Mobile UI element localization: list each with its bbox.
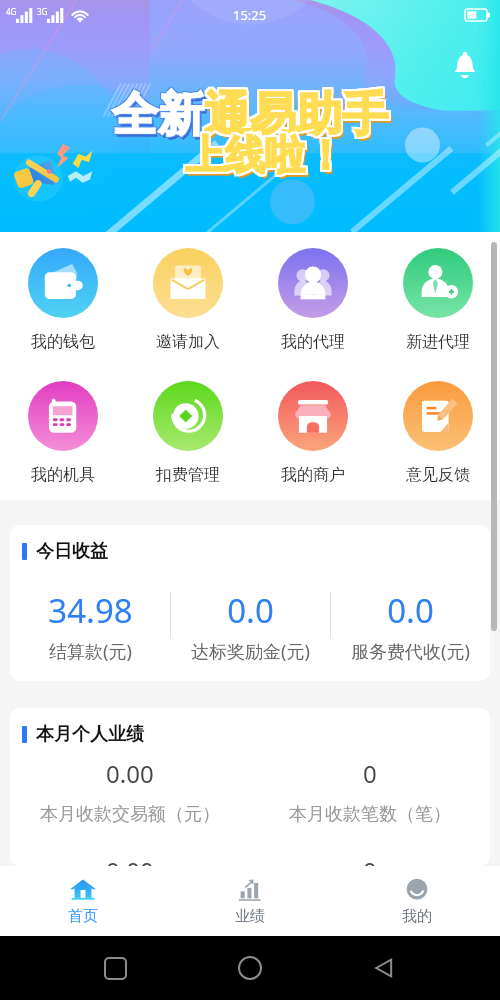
staticText: 本月个人业绩 [36, 723, 144, 746]
staticText: 全新 [113, 85, 205, 143]
staticText: 扣费管理 [156, 465, 220, 485]
staticText: 全新 [111, 87, 203, 145]
staticText: 新进代理 [406, 332, 470, 352]
button[interactable]: 我的钱包 [0, 248, 125, 352]
button[interactable]: Home [230, 948, 270, 988]
staticText: 上线啦！ [183, 128, 343, 178]
staticText: 今日收益 [36, 540, 108, 563]
button[interactable]: Notifications [450, 50, 480, 80]
staticText: 0.00 [106, 757, 154, 790]
staticText: 0.0 [227, 588, 274, 633]
staticText: 通易助手 [204, 86, 388, 144]
button[interactable]: 邀请加入 [125, 248, 250, 352]
button[interactable]: 我的 [333, 866, 500, 936]
staticText: 全新 [113, 86, 205, 144]
staticText: 上线啦！ [187, 128, 347, 178]
staticText: 全新 [113, 87, 205, 145]
staticText: 邀请加入 [156, 332, 220, 352]
staticText: 通易助手 [202, 86, 386, 144]
staticText: 结算款(元) [49, 639, 132, 664]
staticText: 我的商户 [281, 465, 345, 485]
staticText: 3G [37, 6, 48, 17]
staticText: 通易助手 [202, 84, 386, 142]
staticText: 服务费代收(元) [351, 639, 470, 664]
staticText: 15:25 [233, 6, 267, 24]
staticText: 上线啦！ [188, 134, 348, 184]
staticText: 0 [363, 757, 377, 790]
staticText: 本月收款交易额（元） [40, 803, 220, 826]
staticText: 0.00 [106, 854, 154, 866]
button[interactable]: 意见反馈 [375, 381, 500, 485]
staticText: 上线啦！ [185, 132, 345, 182]
button[interactable]: 新进代理 [375, 248, 500, 352]
staticText: 0.0 [387, 588, 434, 633]
button[interactable]: 我的机具 [0, 381, 125, 485]
staticText: 全新 [111, 86, 203, 144]
staticText: 通易助手 [202, 88, 386, 146]
staticText: 全新 [114, 89, 206, 147]
staticText: 34.98 [48, 588, 133, 633]
staticText: 通易助手 [204, 84, 388, 142]
staticText: 通易助手 [204, 88, 388, 146]
staticText: 意见反馈 [406, 465, 470, 485]
staticText: 上线啦！ [187, 130, 347, 180]
staticText: 通易助手 [206, 88, 390, 146]
staticText: 全新 [111, 85, 203, 143]
staticText: 达标奖励金(元) [191, 639, 310, 664]
button[interactable]: Recents [95, 948, 135, 988]
button[interactable]: 扣费管理 [125, 381, 250, 485]
staticText: 我的机具 [31, 465, 95, 485]
staticText: 我的 [402, 907, 432, 926]
button[interactable]: 我的代理 [250, 248, 375, 352]
staticText: 通易助手 [207, 90, 391, 148]
staticText: 我的钱包 [31, 332, 95, 352]
button[interactable]: 业绩 [166, 866, 333, 936]
staticText: 上线啦！ [183, 132, 343, 182]
button[interactable]: Back [365, 948, 405, 988]
staticText: 上线啦！ [183, 130, 343, 180]
staticText: 通易助手 [206, 86, 390, 144]
staticText: 上线啦！ [187, 132, 347, 182]
staticText: 上线啦！ [185, 130, 345, 180]
button[interactable]: 首页 [0, 866, 166, 936]
staticText: 全新 [112, 87, 204, 145]
staticText: 全新 [112, 86, 204, 144]
staticText: 4G [6, 6, 17, 17]
staticText: 上线啦！ [185, 128, 345, 178]
staticText: 本月收款笔数（笔） [289, 803, 451, 826]
staticText: 通易助手 [206, 84, 390, 142]
staticText: 全新 [112, 85, 204, 143]
staticText: 业绩 [235, 907, 265, 926]
staticText: 首页 [68, 907, 98, 926]
staticText: 我的代理 [281, 332, 345, 352]
staticText: 0 [363, 854, 377, 866]
button[interactable]: 我的商户 [250, 381, 375, 485]
